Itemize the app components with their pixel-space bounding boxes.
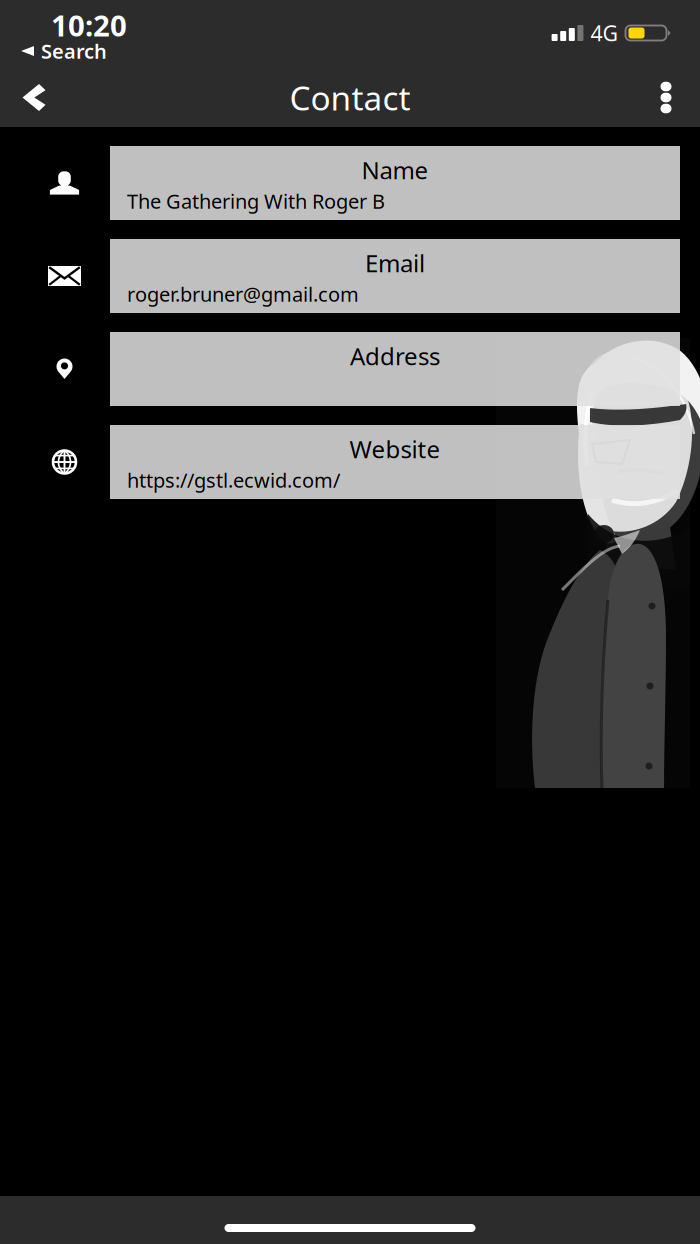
staticText: Search [41,38,107,64]
staticText: Email [365,247,425,279]
staticText: Website [349,433,440,465]
button[interactable]: Website [110,425,680,499]
staticText: Contact [289,75,410,120]
button[interactable]: Search [0,39,300,63]
staticText: 4G [590,19,618,47]
button[interactable]: Back [0,68,68,127]
staticText: 10:20 [51,5,127,44]
staticText: Name [361,154,428,186]
button[interactable]: Address [110,332,680,406]
staticText: roger.bruner@gmail.com [127,281,359,307]
staticText: https://gstl.ecwid.com/ [127,467,340,493]
staticText: The Gathering With Roger B [127,188,385,214]
button[interactable]: More options [632,68,700,127]
button[interactable]: Email [110,239,680,313]
button[interactable]: Name [110,146,680,220]
staticText: Address [350,340,440,372]
